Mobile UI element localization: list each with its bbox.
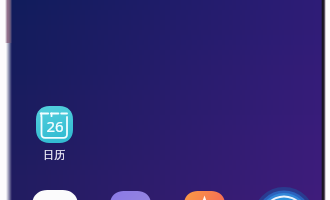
button[interactable]: Camera xyxy=(32,190,78,200)
button[interactable]: Internet xyxy=(253,187,315,200)
button[interactable]: Gallery xyxy=(110,191,151,200)
button[interactable]: 26 xyxy=(36,106,73,162)
staticText: 日历 xyxy=(43,148,65,162)
staticText: 26 xyxy=(46,116,64,136)
button[interactable]: Phone xyxy=(184,191,225,200)
